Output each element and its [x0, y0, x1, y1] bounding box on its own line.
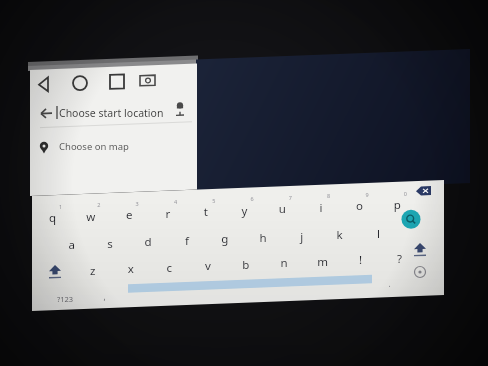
button[interactable]: Choose start location screen [0, 0, 488, 366]
